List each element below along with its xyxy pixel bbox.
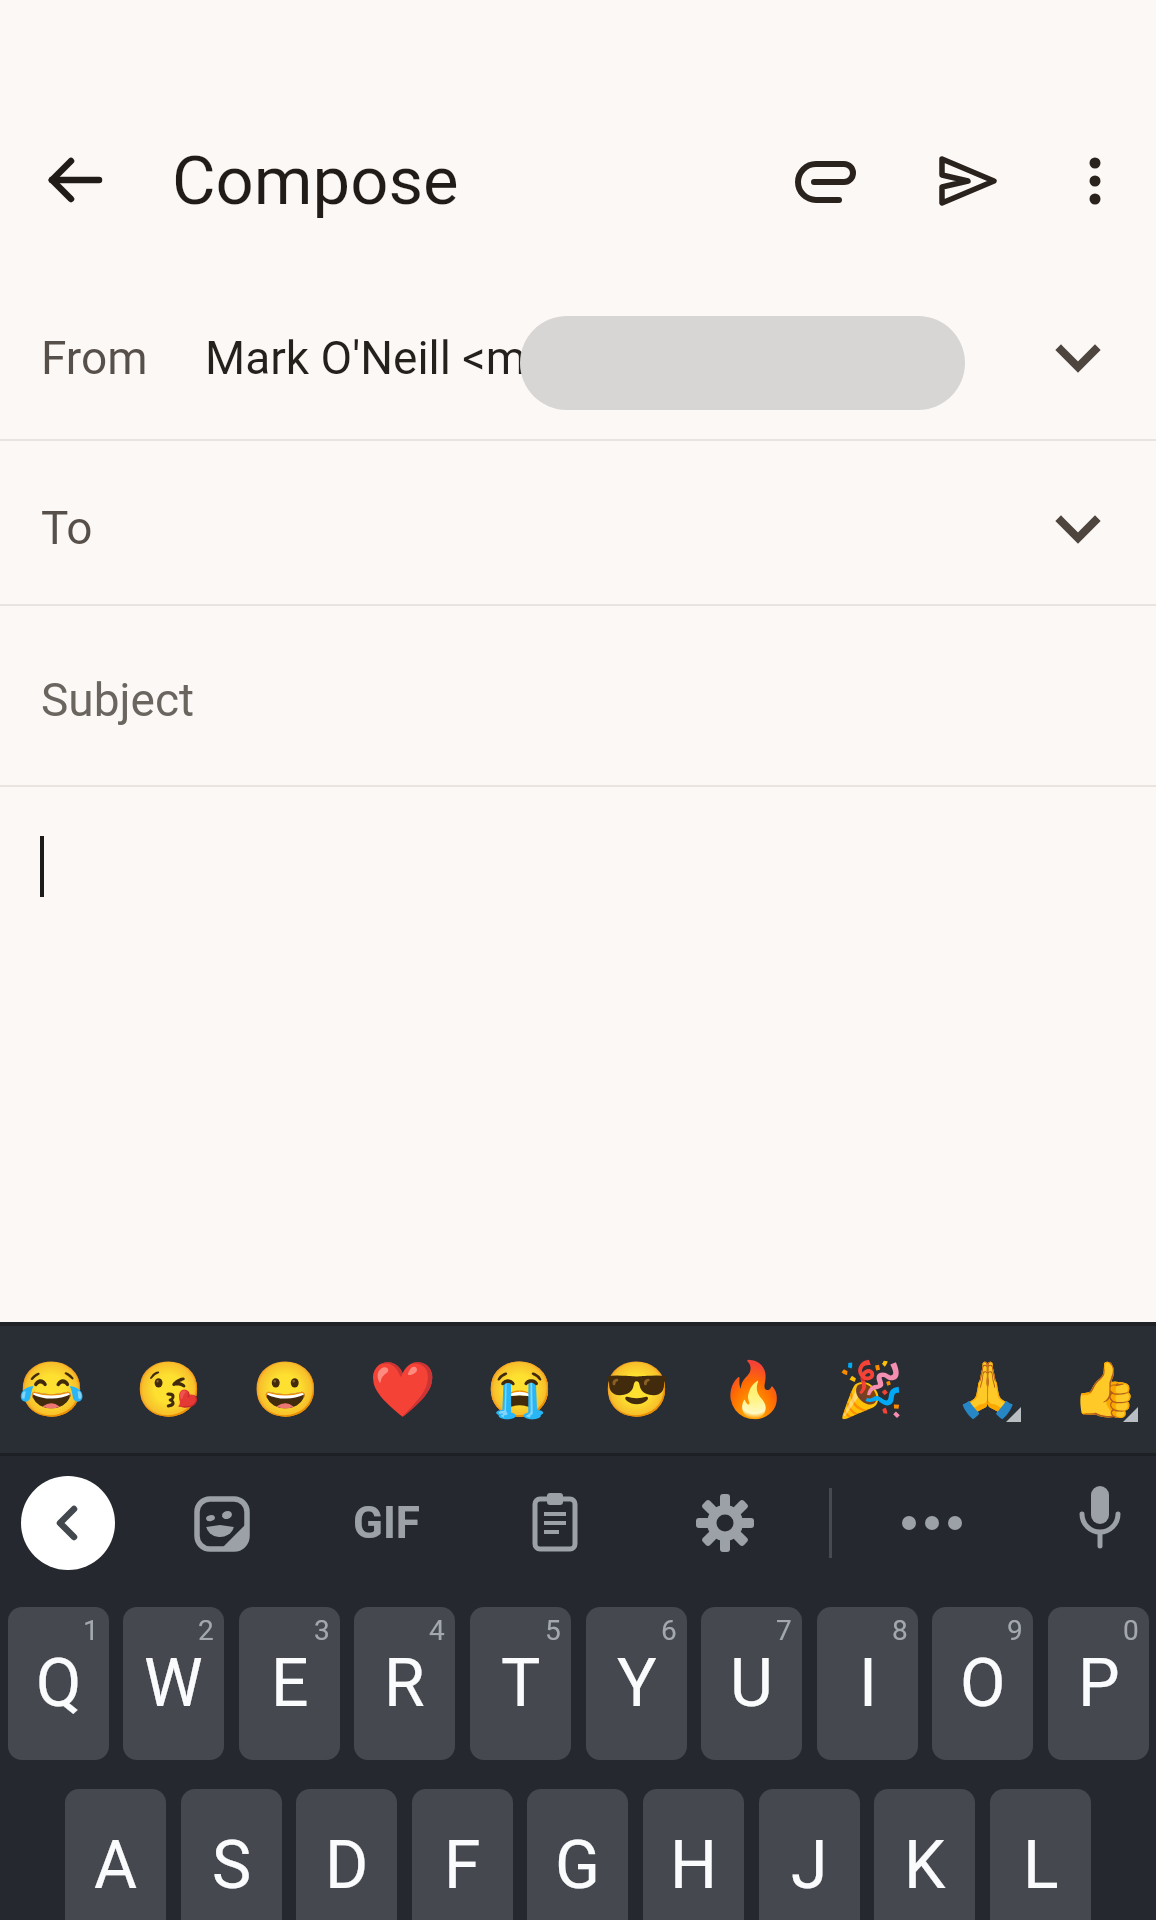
button[interactable] [1063, 149, 1127, 213]
button[interactable]: I [817, 1607, 918, 1760]
staticText: 😎 [603, 1358, 671, 1421]
staticText: W [144, 1645, 203, 1722]
staticText: ❤️ [369, 1358, 437, 1421]
button[interactable] [523, 1491, 587, 1555]
button[interactable] [190, 1491, 254, 1555]
button[interactable]: R [354, 1607, 455, 1760]
button[interactable]: F [412, 1789, 513, 1920]
staticText: L [1023, 1827, 1059, 1904]
staticText: To [41, 501, 93, 555]
button[interactable]: U [701, 1607, 802, 1760]
button[interactable]: A [65, 1789, 166, 1920]
button[interactable]: 😎 [580, 1322, 694, 1456]
staticText: 3 [314, 1614, 330, 1647]
staticText: Compose [172, 142, 459, 221]
staticText: P [1078, 1645, 1120, 1722]
staticText: 5 [545, 1614, 561, 1647]
staticText: 2 [198, 1614, 214, 1647]
staticText: 🎉 [837, 1358, 905, 1421]
button[interactable] [794, 150, 858, 214]
button[interactable]: Q [8, 1607, 109, 1760]
staticText: A [94, 1827, 138, 1904]
button[interactable]: L [990, 1789, 1091, 1920]
staticText: 😭 [486, 1358, 554, 1421]
staticText: 7 [776, 1614, 792, 1647]
button[interactable]: 😭 [463, 1322, 577, 1456]
staticText: 1 [83, 1614, 99, 1647]
button[interactable] [900, 1491, 964, 1555]
staticText: R [384, 1645, 425, 1722]
staticText: 😂 [18, 1358, 86, 1421]
staticText: K [904, 1827, 946, 1904]
staticText: Subject [41, 673, 195, 727]
button[interactable]: H [643, 1789, 744, 1920]
button[interactable]: 😘 [112, 1322, 226, 1456]
button[interactable]: E [239, 1607, 340, 1760]
staticText: 8 [892, 1614, 908, 1647]
button[interactable]: 😂 [0, 1322, 109, 1456]
staticText: 9 [1007, 1614, 1023, 1647]
staticText: 🔥 [720, 1358, 788, 1421]
button[interactable]: Subject [0, 606, 1156, 785]
staticText: I [859, 1645, 877, 1722]
staticText: U [730, 1645, 773, 1722]
button[interactable]: D [296, 1789, 397, 1920]
button[interactable] [21, 1476, 115, 1570]
button[interactable]: T [470, 1607, 571, 1760]
button[interactable]: W [123, 1607, 224, 1760]
staticText: From [41, 331, 148, 385]
button[interactable]: K [874, 1789, 975, 1920]
staticText: 😀 [252, 1358, 320, 1421]
button[interactable]: G [527, 1789, 628, 1920]
button[interactable]: GIF [340, 1491, 432, 1555]
button[interactable]: Y [586, 1607, 687, 1760]
button[interactable] [933, 147, 1001, 215]
staticText: Q [36, 1645, 82, 1722]
button[interactable] [0, 787, 1156, 1322]
button[interactable] [693, 1491, 757, 1555]
button[interactable]: ❤️ [346, 1322, 460, 1456]
staticText: O [960, 1645, 1006, 1722]
button[interactable]: 🔥 [697, 1322, 811, 1456]
button[interactable]: O [932, 1607, 1033, 1760]
button[interactable]: 😀 [229, 1322, 343, 1456]
staticText: 😘 [135, 1358, 203, 1421]
staticText: 🙏 [954, 1358, 1022, 1421]
staticText: T [501, 1645, 541, 1722]
staticText: H [670, 1827, 718, 1904]
button[interactable]: P [1048, 1607, 1149, 1760]
button[interactable] [1068, 1484, 1132, 1560]
staticText: F [444, 1827, 481, 1904]
button[interactable]: 🙏 [931, 1322, 1045, 1456]
staticText: D [325, 1827, 369, 1904]
button[interactable]: 👍 [1048, 1322, 1156, 1456]
staticText: 4 [429, 1614, 445, 1647]
staticText: E [271, 1645, 309, 1722]
button[interactable] [40, 145, 110, 215]
button[interactable]: 🎉 [814, 1322, 928, 1456]
staticText: S [212, 1827, 252, 1904]
staticText: 👍 [1071, 1358, 1139, 1421]
staticText: J [791, 1827, 828, 1904]
button[interactable]: S [181, 1789, 282, 1920]
staticText: 6 [661, 1614, 677, 1647]
staticText: 0 [1123, 1614, 1139, 1647]
staticText: G [555, 1827, 600, 1904]
staticText: GIF [353, 1497, 420, 1549]
staticText: Y [617, 1645, 657, 1722]
button[interactable]: From [0, 278, 1156, 439]
button[interactable]: J [759, 1789, 860, 1920]
staticText: Mark O'Neill <mar [205, 331, 567, 385]
button[interactable]: To [0, 441, 1156, 604]
